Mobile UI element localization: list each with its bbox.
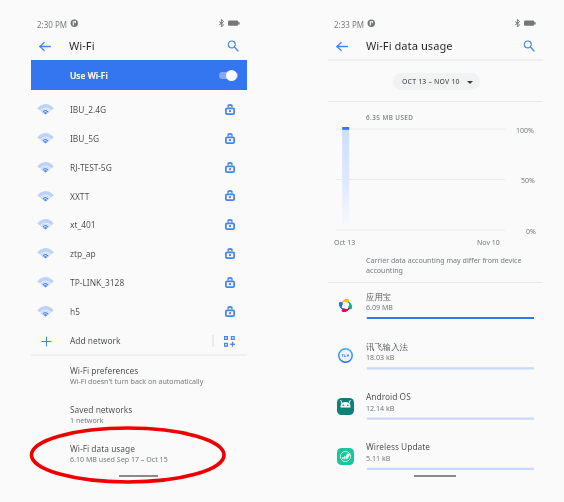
staticText: 12.14 kB (366, 403, 395, 413)
staticText: Use Wi-Fi (70, 70, 108, 82)
button[interactable]: Back (332, 35, 353, 56)
staticText: ztp_ap (70, 248, 96, 259)
button[interactable] (31, 401, 247, 434)
button[interactable] (31, 124, 247, 153)
staticText: RJ-TEST-5G (70, 162, 112, 173)
button[interactable] (328, 290, 543, 335)
button[interactable] (31, 297, 247, 326)
button[interactable] (31, 362, 247, 395)
button[interactable] (31, 182, 247, 211)
button[interactable] (328, 390, 543, 435)
staticText: OCT 13 – NOV 10 (402, 77, 460, 86)
staticText: Add network (70, 335, 121, 346)
button[interactable] (31, 268, 247, 297)
button[interactable] (328, 440, 543, 485)
staticText: Wi-Fi data usage (366, 38, 453, 53)
staticText: Wi-Fi (69, 38, 95, 53)
staticText: XXTT (70, 191, 90, 202)
button[interactable] (31, 239, 247, 268)
button[interactable] (31, 327, 247, 355)
staticText: 6.10 MB used Sep 17 – Oct 15 (70, 454, 168, 464)
staticText: Saved networks (70, 404, 133, 415)
staticText: accounting (366, 265, 403, 275)
button[interactable]: Back (35, 35, 56, 56)
button[interactable] (328, 340, 543, 385)
staticText: TP-LINK_3128 (70, 277, 125, 288)
staticText: IBU_2.4G (70, 104, 107, 115)
staticText: 50% (521, 176, 535, 186)
staticText: Wi-Fi preferences (70, 365, 139, 376)
staticText: 5.11 kB (366, 453, 391, 463)
staticText: 6.35 MB USED (366, 113, 414, 122)
staticText: Carrier data accounting may differ from … (366, 255, 522, 265)
button[interactable] (31, 153, 247, 182)
staticText: 18.03 kB (366, 352, 395, 362)
staticText: 6.09 MB (366, 302, 393, 312)
staticText: 讯飞输入法 (366, 342, 408, 353)
staticText: 0% (526, 227, 536, 237)
button[interactable]: Search (519, 35, 540, 56)
staticText: IBU_5G (70, 133, 100, 144)
staticText: Wi-Fi data usage (70, 443, 135, 454)
staticText: Android OS (366, 391, 411, 402)
button[interactable]: Use Wi-Fi (31, 60, 247, 90)
staticText: 2:33 PM (334, 19, 365, 30)
staticText: 100% (516, 126, 534, 136)
button[interactable]: OCT 13 – NOV 10 (393, 73, 480, 90)
staticText: Oct 13 (334, 238, 356, 248)
button[interactable]: Scan QR code (224, 336, 235, 347)
staticText: xt_401 (70, 219, 96, 230)
staticText: h5 (70, 306, 80, 317)
button[interactable] (31, 211, 247, 240)
staticText: Wireless Update (366, 441, 431, 452)
button[interactable] (31, 440, 247, 473)
staticText: Wi-Fi doesn't turn back on automatically (70, 376, 204, 386)
staticText: 2:30 PM (37, 19, 68, 30)
button[interactable]: Search (223, 35, 244, 56)
staticText: 1 network (70, 415, 104, 425)
button[interactable] (31, 95, 247, 124)
staticText: 应用宝 (366, 292, 392, 303)
staticText: Nov 10 (477, 238, 500, 248)
